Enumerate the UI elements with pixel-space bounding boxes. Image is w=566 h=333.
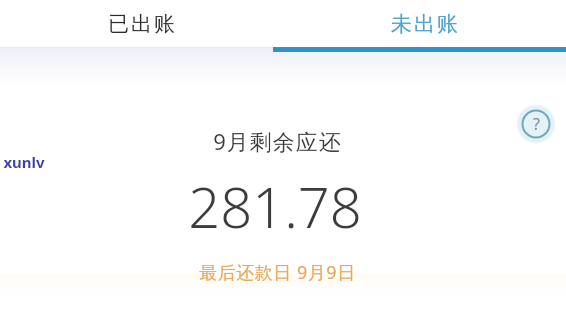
button[interactable]: 已出账 — [0, 0, 283, 47]
staticText: 9月剩余应还 — [213, 126, 342, 156]
staticText: 最后还款日 9月9日 — [199, 260, 356, 285]
staticText: xunlv — [3, 152, 45, 172]
button[interactable]: Help — [517, 105, 555, 143]
staticText: ? — [533, 113, 540, 135]
button[interactable]: 未出账 — [283, 0, 566, 47]
staticText: 已出账 — [107, 11, 176, 37]
staticText: 281.78 — [188, 168, 362, 244]
staticText: 未出账 — [390, 11, 459, 37]
